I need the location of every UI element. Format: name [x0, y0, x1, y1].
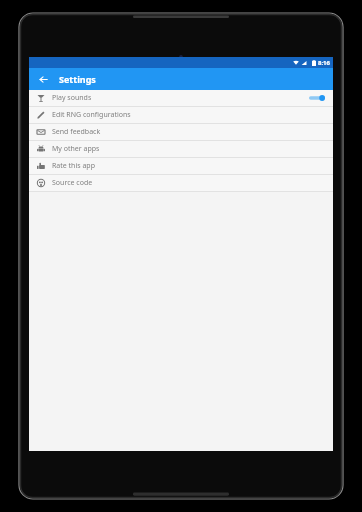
staticText: Send feedback [52, 127, 101, 137]
staticText: Play sounds [52, 93, 92, 103]
staticText: My other apps [52, 144, 100, 154]
button[interactable]: My other apps [29, 141, 333, 157]
staticText: Source code [52, 178, 93, 188]
staticText: Settings [59, 73, 96, 85]
button[interactable]: Rate this app [29, 158, 333, 174]
button[interactable]: Edit RNG configurations [29, 107, 333, 123]
button[interactable]: Play sounds [29, 90, 333, 106]
button[interactable]: Send feedback [29, 124, 333, 140]
button[interactable]: Navigate up [36, 72, 50, 86]
staticText: 8:16 [318, 59, 330, 67]
staticText: Rate this app [52, 161, 95, 171]
staticText: Edit RNG configurations [52, 110, 131, 120]
button[interactable]: Source code [29, 175, 333, 191]
